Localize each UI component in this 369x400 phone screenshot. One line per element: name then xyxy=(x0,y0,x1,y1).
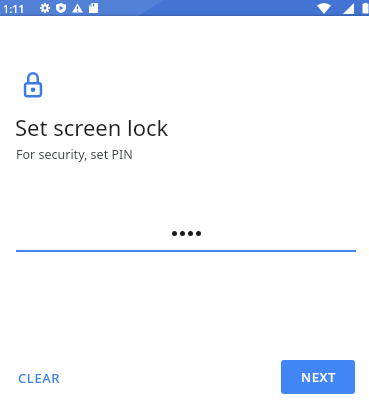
staticText: 1:11 xyxy=(3,1,25,16)
staticText: Set screen lock xyxy=(15,112,169,142)
staticText: For security, set PIN xyxy=(16,146,133,163)
button[interactable]: NEXT xyxy=(281,360,355,394)
staticText: CLEAR xyxy=(18,369,61,387)
button[interactable]: CLEAR xyxy=(6,360,73,396)
staticText: NEXT xyxy=(301,368,336,386)
